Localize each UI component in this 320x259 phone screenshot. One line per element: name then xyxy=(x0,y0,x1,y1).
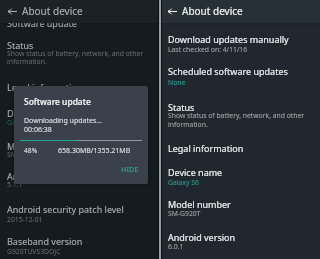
button[interactable] xyxy=(0,104,158,130)
staticText: None xyxy=(168,78,186,87)
staticText: G920TUVS3DOJC xyxy=(7,247,61,256)
button[interactable] xyxy=(0,36,158,70)
staticText: Baseband version xyxy=(7,235,83,247)
staticText: 2015-12-01 xyxy=(7,215,43,224)
staticText: 5.1.1 xyxy=(7,180,23,189)
staticText: Software update xyxy=(7,17,77,29)
button[interactable] xyxy=(0,231,158,257)
staticText: Legal information xyxy=(168,142,244,154)
staticText: 6.0.1 xyxy=(168,242,184,251)
staticText: Status xyxy=(168,101,195,113)
staticText: About device xyxy=(182,4,243,18)
staticText: Download updates manually xyxy=(168,33,289,45)
button[interactable]: About device xyxy=(0,0,158,23)
staticText: 658.30MB/1355.21MB xyxy=(58,146,131,156)
button[interactable] xyxy=(0,167,158,193)
staticText: Galaxy S6 xyxy=(7,118,38,127)
staticText: Scheduled software updates xyxy=(168,65,288,77)
staticText: Software update xyxy=(24,96,91,108)
button[interactable] xyxy=(162,163,320,189)
button[interactable] xyxy=(0,13,158,35)
staticText: Show status of battery, network, and oth… xyxy=(7,49,144,58)
staticText: Status xyxy=(7,39,34,51)
button[interactable]: Navigate up xyxy=(164,3,180,19)
staticText: HIDE xyxy=(121,164,139,174)
staticText: Android version xyxy=(7,170,75,182)
staticText: Android security patch level xyxy=(7,203,124,215)
staticText: Galaxy S6 xyxy=(168,178,199,187)
staticText: Legal information xyxy=(7,81,83,93)
staticText: About device xyxy=(22,4,83,18)
button[interactable] xyxy=(0,199,158,225)
staticText: information. xyxy=(7,57,47,66)
button[interactable] xyxy=(162,62,320,88)
staticText: Model number xyxy=(168,198,231,210)
staticText: 00:06:38 xyxy=(24,125,52,135)
button[interactable] xyxy=(162,30,320,56)
staticText: Model number xyxy=(7,140,70,152)
button[interactable]: About device xyxy=(162,0,320,23)
staticText: information. xyxy=(168,120,208,129)
staticText: Last checked on: 4/11/16 xyxy=(168,45,248,54)
button[interactable] xyxy=(162,194,320,220)
button[interactable]: HIDE xyxy=(117,161,143,177)
staticText: Downloading updates... xyxy=(24,116,102,126)
button[interactable]: Navigate up xyxy=(4,3,20,19)
staticText: Show status of battery, network, and oth… xyxy=(168,111,305,120)
button[interactable] xyxy=(162,228,320,254)
staticText: Device name xyxy=(7,107,62,119)
button[interactable] xyxy=(0,136,158,162)
button[interactable] xyxy=(162,97,320,131)
staticText: Android version xyxy=(168,231,236,243)
staticText: SM-G920T xyxy=(7,150,40,159)
button[interactable] xyxy=(0,77,158,99)
button[interactable] xyxy=(162,138,320,160)
staticText: Device name xyxy=(168,166,223,178)
staticText: 48% xyxy=(24,146,38,155)
staticText: SM-G920T xyxy=(168,209,201,218)
